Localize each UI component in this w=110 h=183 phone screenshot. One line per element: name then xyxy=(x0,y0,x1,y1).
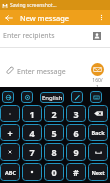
button[interactable]: del xyxy=(88,105,108,122)
button[interactable]: More options xyxy=(93,10,109,25)
button[interactable]: Keyboard xyxy=(90,91,102,103)
button[interactable]: Next xyxy=(88,163,108,181)
button[interactable]: Send message xyxy=(91,63,104,76)
staticText: Saving screenshot... xyxy=(10,2,57,9)
staticText: # xyxy=(73,166,79,178)
button[interactable]: 8 xyxy=(44,143,64,161)
button[interactable]: 2 xyxy=(44,105,64,122)
button[interactable]: Handwriting xyxy=(71,91,83,103)
button[interactable]: 1 xyxy=(22,105,42,122)
button[interactable]: 0 xyxy=(44,163,64,181)
staticText: + xyxy=(7,127,13,139)
staticText: 5 xyxy=(51,127,57,139)
staticText: Back xyxy=(91,129,105,136)
button[interactable]: 4 xyxy=(22,124,42,141)
staticText: 1 xyxy=(29,108,35,120)
button[interactable]: Emoji xyxy=(2,91,14,103)
staticText: ABC xyxy=(5,169,16,176)
staticText: 2 xyxy=(51,108,57,120)
button[interactable]: 5 xyxy=(44,124,64,141)
staticText: Enter message xyxy=(17,67,66,77)
button[interactable]: English xyxy=(40,92,64,103)
staticText: Enter recipients xyxy=(3,31,55,41)
staticText: 3 xyxy=(73,108,79,120)
staticText: 0 xyxy=(51,166,57,178)
staticText: Next xyxy=(91,169,105,176)
button[interactable]: 7 xyxy=(22,143,42,161)
button[interactable]: ABC xyxy=(0,163,20,181)
staticText: New message xyxy=(20,13,70,23)
staticText: 7 xyxy=(29,146,35,158)
button[interactable]: Settings xyxy=(21,91,33,103)
button[interactable]: x xyxy=(0,143,20,161)
button[interactable]: # xyxy=(66,163,86,181)
staticText: 8 xyxy=(51,146,57,158)
button[interactable]: space xyxy=(88,143,108,161)
button[interactable]: Back xyxy=(1,10,16,25)
button[interactable]: 9 xyxy=(66,143,86,161)
staticText: 9 xyxy=(73,146,79,158)
staticText: 160/1 xyxy=(91,77,104,91)
button[interactable]: 3 xyxy=(66,105,86,122)
button[interactable]: 6 xyxy=(66,124,86,141)
button[interactable]: Pick contacts xyxy=(87,26,107,46)
staticText: 6 xyxy=(73,127,79,139)
button[interactable]: + xyxy=(0,124,20,141)
button[interactable]: star xyxy=(22,163,42,181)
button[interactable]: Back xyxy=(88,124,108,141)
button[interactable]: . xyxy=(0,105,20,122)
button[interactable]: Attach file xyxy=(1,62,18,79)
staticText: 4 xyxy=(29,127,35,139)
staticText: English xyxy=(42,94,63,102)
